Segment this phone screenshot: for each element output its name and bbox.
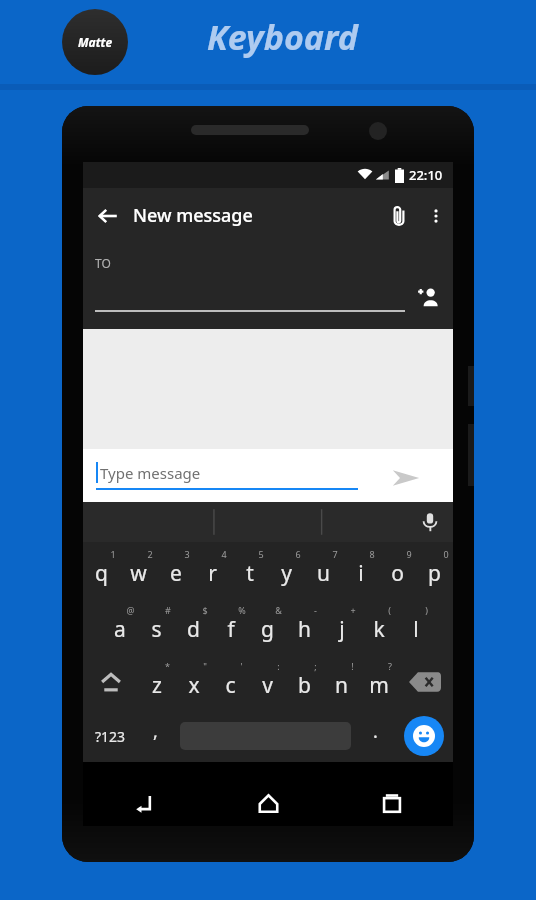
staticText: d <box>187 615 200 644</box>
staticText: y <box>281 559 292 588</box>
staticText: ?123 <box>95 727 126 746</box>
staticText: 4 <box>221 548 227 560</box>
staticText: 22:10 <box>409 166 443 184</box>
staticText: # <box>165 604 171 616</box>
staticText: " <box>203 660 207 672</box>
staticText: $ <box>202 604 208 616</box>
button[interactable]: Send <box>385 457 427 499</box>
button[interactable]: 4 <box>194 542 231 598</box>
button[interactable]: 0 <box>416 542 453 598</box>
staticText: 7 <box>332 548 338 560</box>
staticText: 6 <box>295 548 301 560</box>
staticText: o <box>391 559 404 588</box>
button[interactable]: : <box>249 654 286 710</box>
button[interactable]: ! <box>323 654 360 710</box>
staticText: ! <box>351 660 354 672</box>
button[interactable]: ) <box>397 598 434 654</box>
staticText: h <box>298 615 311 644</box>
button[interactable]: Back <box>83 188 133 243</box>
staticText: 1 <box>110 548 116 560</box>
staticText: t <box>246 559 254 588</box>
staticText: . <box>373 719 378 744</box>
staticText: b <box>298 671 311 700</box>
staticText: TO <box>95 255 111 271</box>
staticText: Type message <box>100 463 201 483</box>
staticText: f <box>227 615 235 644</box>
button[interactable]: # <box>138 598 175 654</box>
staticText: l <box>413 615 419 644</box>
button[interactable]: 7 <box>305 542 342 598</box>
staticText: New message <box>133 203 253 228</box>
button[interactable]: & <box>249 598 286 654</box>
button[interactable]: Home <box>207 780 330 826</box>
button[interactable]: 5 <box>231 542 268 598</box>
staticText: ? <box>388 660 392 672</box>
button[interactable]: ; <box>286 654 323 710</box>
staticText: r <box>208 559 217 588</box>
staticText: ( <box>388 604 391 616</box>
button[interactable]: " <box>175 654 212 710</box>
staticText: e <box>170 559 182 588</box>
staticText: z <box>152 671 162 700</box>
button[interactable]: More options <box>419 188 453 243</box>
staticText: 2 <box>147 548 153 560</box>
button[interactable]: Attach <box>379 188 419 243</box>
staticText: : <box>277 660 280 672</box>
button[interactable]: ( <box>360 598 397 654</box>
staticText: w <box>130 559 147 588</box>
staticText: % <box>238 604 246 616</box>
button[interactable]: Matte <box>62 9 128 75</box>
button[interactable]: Backspace <box>397 654 453 710</box>
staticText: n <box>335 671 348 700</box>
button[interactable]: 3 <box>157 542 194 598</box>
staticText: q <box>95 559 108 588</box>
button[interactable]: @ <box>101 598 138 654</box>
staticText: * <box>165 660 170 672</box>
button[interactable]: 2 <box>120 542 157 598</box>
staticText: k <box>373 615 385 644</box>
button[interactable]: + <box>323 598 360 654</box>
button[interactable]: Emoji <box>394 710 453 762</box>
button[interactable]: 8 <box>342 542 379 598</box>
staticText: u <box>317 559 330 588</box>
button[interactable]: ' <box>212 654 249 710</box>
staticText: 0 <box>443 548 449 560</box>
button[interactable]: * <box>138 654 175 710</box>
staticText: m <box>369 671 389 700</box>
staticText: v <box>262 671 273 700</box>
button[interactable]: Voice input <box>415 507 445 537</box>
button[interactable]: . <box>357 710 394 762</box>
button[interactable]: $ <box>175 598 212 654</box>
button[interactable]: Type message <box>96 460 358 492</box>
button[interactable]: 9 <box>379 542 416 598</box>
button[interactable]: Recents <box>330 780 453 826</box>
button[interactable]: Add contact <box>410 279 446 315</box>
button[interactable]: 6 <box>268 542 305 598</box>
staticText: , <box>153 719 158 744</box>
staticText: 3 <box>184 548 190 560</box>
button[interactable]: - <box>286 598 323 654</box>
staticText: @ <box>126 604 135 616</box>
staticText: & <box>275 604 282 616</box>
button[interactable]: Shift <box>83 654 138 710</box>
staticText: - <box>314 604 317 616</box>
staticText: Keyboard <box>207 14 358 60</box>
staticText: c <box>225 671 236 700</box>
button[interactable]: ?123 <box>83 710 137 762</box>
button[interactable]: ? <box>360 654 397 710</box>
button[interactable]: % <box>212 598 249 654</box>
staticText: j <box>339 615 345 644</box>
staticText: p <box>428 559 441 588</box>
staticText: ' <box>240 660 243 672</box>
staticText: i <box>358 559 364 588</box>
button[interactable]: 1 <box>83 542 120 598</box>
button[interactable]: , <box>137 710 174 762</box>
staticText: x <box>188 671 200 700</box>
button[interactable]: Back <box>83 780 207 826</box>
staticText: 5 <box>258 548 264 560</box>
staticText: ; <box>314 660 317 672</box>
staticText: g <box>261 615 274 644</box>
staticText: s <box>151 615 162 644</box>
staticText: + <box>350 604 356 616</box>
